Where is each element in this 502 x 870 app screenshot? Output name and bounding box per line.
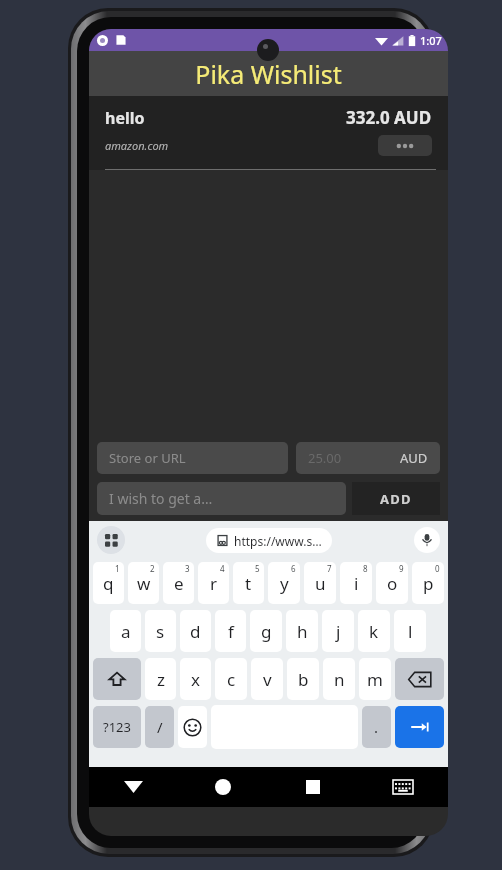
button[interactable]: ?123 <box>93 706 141 748</box>
staticText: 25.00 <box>308 449 342 467</box>
staticText: x <box>191 668 200 691</box>
button[interactable]: w <box>128 562 159 604</box>
button[interactable]: a <box>110 610 141 652</box>
staticText: j <box>336 620 341 643</box>
button[interactable]: https://www.s… <box>206 528 332 553</box>
button[interactable]: o <box>376 562 408 604</box>
staticText: t <box>245 572 252 595</box>
button[interactable]: 25.00 <box>296 442 440 474</box>
staticText: n <box>334 668 345 691</box>
staticText: Store or URL <box>109 449 186 467</box>
button[interactable]: Switch keyboard <box>358 767 448 807</box>
button[interactable]: c <box>215 658 247 700</box>
button[interactable]: m <box>359 658 391 700</box>
staticText: amazon.com <box>105 138 169 153</box>
staticText: i <box>354 572 359 595</box>
button[interactable]: z <box>145 658 176 700</box>
button[interactable]: s <box>145 610 176 652</box>
button[interactable]: t <box>233 562 264 604</box>
button[interactable]: p <box>412 562 444 604</box>
button[interactable]: h <box>286 610 318 652</box>
staticText: 6 <box>291 563 296 574</box>
staticText: I wish to get a… <box>109 489 213 508</box>
staticText: a <box>121 620 131 643</box>
button[interactable]: j <box>322 610 354 652</box>
staticText: 1 <box>115 563 120 574</box>
staticText: 5 <box>255 563 260 574</box>
button[interactable]: f <box>215 610 246 652</box>
staticText: d <box>190 620 201 643</box>
staticText: b <box>298 668 309 691</box>
staticText: o <box>387 572 398 595</box>
staticText: w <box>137 572 151 595</box>
button[interactable]: Next <box>395 706 444 748</box>
button[interactable]: g <box>250 610 282 652</box>
staticText: ?123 <box>103 718 131 736</box>
button[interactable]: y <box>268 562 300 604</box>
staticText: ADD <box>380 490 412 508</box>
button[interactable]: I wish to get a… <box>97 482 346 515</box>
button[interactable]: Backspace <box>395 658 444 700</box>
button[interactable]: . <box>362 706 391 748</box>
button[interactable]: Voice input <box>414 527 440 553</box>
staticText: hello <box>105 107 145 129</box>
staticText: / <box>157 717 163 737</box>
button[interactable]: Emoji <box>178 706 207 748</box>
staticText: 9 <box>399 563 404 574</box>
staticText: m <box>367 668 383 691</box>
staticText: p <box>423 572 434 595</box>
staticText: 332.0 AUD <box>346 106 432 129</box>
button[interactable]: More options <box>378 135 432 156</box>
button[interactable]: r <box>198 562 229 604</box>
staticText: q <box>103 572 114 595</box>
staticText: 4 <box>220 563 225 574</box>
staticText: 7 <box>327 563 332 574</box>
staticText: c <box>227 668 236 691</box>
staticText: . <box>374 717 379 737</box>
staticText: z <box>157 668 165 691</box>
staticText: f <box>228 620 234 643</box>
button[interactable]: d <box>180 610 211 652</box>
button[interactable]: n <box>323 658 355 700</box>
button[interactable]: Keyboard options <box>97 526 125 554</box>
staticText: e <box>174 572 184 595</box>
staticText: h <box>297 620 308 643</box>
button[interactable]: q <box>93 562 124 604</box>
staticText: https://www.s… <box>234 533 322 549</box>
staticText: l <box>408 620 413 643</box>
button[interactable]: x <box>180 658 211 700</box>
staticText: 0 <box>435 563 440 574</box>
button[interactable]: l <box>394 610 426 652</box>
button[interactable]: Shift <box>93 658 141 700</box>
staticText: AUD <box>400 449 428 467</box>
button[interactable]: Home <box>178 767 268 807</box>
staticText: 2 <box>150 563 155 574</box>
staticText: y <box>280 572 289 595</box>
button[interactable]: b <box>287 658 319 700</box>
button[interactable]: Hide keyboard <box>89 767 178 807</box>
button[interactable]: Recent apps <box>268 767 358 807</box>
staticText: k <box>369 620 379 643</box>
staticText: 8 <box>363 563 368 574</box>
staticText: r <box>210 572 218 595</box>
button[interactable]: ADD <box>352 482 440 515</box>
staticText: 3 <box>185 563 190 574</box>
button[interactable]: u <box>304 562 336 604</box>
button[interactable]: v <box>251 658 283 700</box>
staticText: u <box>315 572 326 595</box>
button[interactable]: Store or URL <box>97 442 288 474</box>
staticText: 1:07 <box>420 33 442 48</box>
staticText: v <box>263 668 272 691</box>
button[interactable]: i <box>340 562 372 604</box>
button[interactable]: hello <box>89 96 448 169</box>
button[interactable]: e <box>163 562 194 604</box>
staticText: Pika Wishlist <box>195 57 342 91</box>
button[interactable]: / <box>145 706 174 748</box>
staticText: g <box>261 620 272 643</box>
button[interactable]: k <box>358 610 390 652</box>
staticText: s <box>156 620 165 643</box>
